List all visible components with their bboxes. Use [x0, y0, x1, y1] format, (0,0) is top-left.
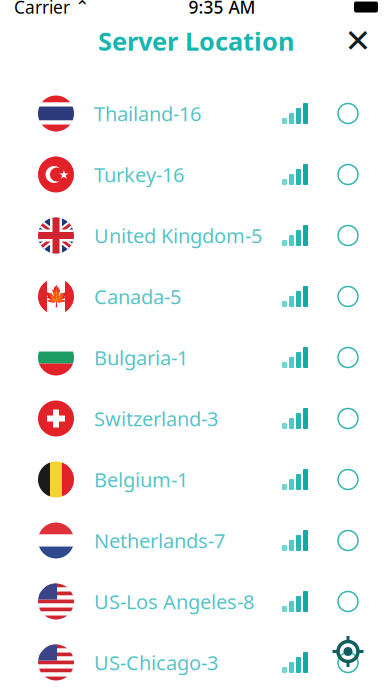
staticText: United Kingdom-5 [94, 222, 262, 249]
staticText: Thailand-16 [94, 100, 201, 127]
staticText: Belgium-1 [94, 466, 188, 493]
staticText: US-Los Angeles-8 [94, 588, 254, 615]
button[interactable]: US-Chicago-3 [0, 632, 392, 693]
staticText: Carrier [14, 0, 70, 18]
staticText: ⌃ [75, 0, 90, 17]
staticText: Bulgaria-1 [94, 344, 188, 371]
staticText: Server Location [98, 24, 294, 58]
button[interactable]: US-Los Angeles-8 [0, 571, 392, 632]
button[interactable]: United Kingdom-5 [0, 205, 392, 266]
button[interactable]: Thailand-16 [0, 83, 392, 144]
button[interactable]: Bulgaria-1 [0, 327, 392, 388]
button[interactable]: Close [338, 21, 378, 61]
staticText: 9:35 AM [188, 0, 255, 18]
staticText: ✕ [344, 23, 371, 59]
staticText: Canada-5 [94, 283, 181, 310]
staticText: 🍁 [43, 285, 68, 308]
button[interactable]: 🍁 [0, 266, 392, 327]
staticText: ★ [58, 168, 69, 181]
staticText: US-Chicago-3 [94, 649, 218, 676]
button[interactable]: Belgium-1 [0, 449, 392, 510]
staticText: Turkey-16 [94, 161, 184, 188]
staticText: Switzerland-3 [94, 405, 218, 432]
button[interactable]: Switzerland-3 [0, 388, 392, 449]
button[interactable]: ★ [0, 144, 392, 205]
staticText: Netherlands-7 [94, 527, 225, 554]
button[interactable]: Netherlands-7 [0, 510, 392, 571]
